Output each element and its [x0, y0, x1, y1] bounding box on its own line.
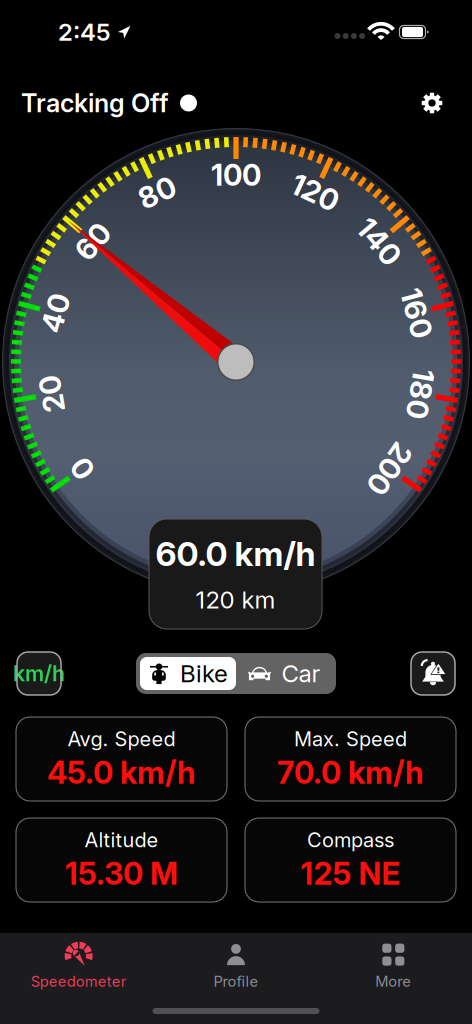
staticText: Compass [307, 828, 394, 852]
button[interactable]: Compass [245, 818, 456, 902]
staticText: Car [281, 659, 320, 688]
button[interactable]: Altitude [16, 818, 227, 902]
button[interactable]: Avg. Speed [16, 717, 227, 801]
button[interactable]: More [315, 940, 472, 992]
staticText: 200 [362, 451, 418, 486]
staticText: Profile [213, 973, 258, 990]
button[interactable]: Max. Speed [245, 717, 456, 801]
button[interactable]: Profile [157, 940, 315, 992]
staticText: 120 [290, 175, 339, 210]
staticText: Bike [180, 659, 228, 688]
staticText: 40 [36, 295, 75, 331]
staticText: Tracking Off [21, 88, 169, 118]
button[interactable]: Car [236, 657, 332, 690]
staticText: 15.30 M [65, 855, 178, 892]
staticText: 70.0 km/h [277, 754, 424, 791]
button[interactable]: km/h [17, 652, 61, 695]
staticText: 125 NE [300, 855, 400, 892]
staticText: 80 [138, 175, 176, 210]
staticText: 0 [73, 451, 92, 486]
staticText: 60 [74, 224, 112, 259]
staticText: More [375, 973, 411, 990]
staticText: 2:45 [58, 17, 111, 46]
staticText: Max. Speed [294, 727, 407, 751]
staticText: 180 [395, 376, 445, 412]
staticText: 100 [211, 157, 261, 193]
staticText: Avg. Speed [67, 727, 175, 751]
button[interactable]: Speedometer [0, 940, 157, 992]
staticText: 140 [354, 224, 405, 259]
staticText: Speedometer [31, 973, 127, 990]
staticText: Altitude [84, 828, 158, 852]
staticText: km/h [13, 661, 65, 686]
button[interactable]: Speed alerts [411, 652, 455, 695]
button[interactable]: Bike [140, 657, 236, 690]
staticText: 160 [391, 295, 441, 331]
staticText: 45.0 km/h [47, 754, 196, 791]
button[interactable]: Settings [413, 84, 451, 122]
staticText: 60.0 km/h [155, 534, 315, 574]
staticText: 120 km [195, 585, 275, 614]
staticText: 20 [33, 376, 70, 412]
